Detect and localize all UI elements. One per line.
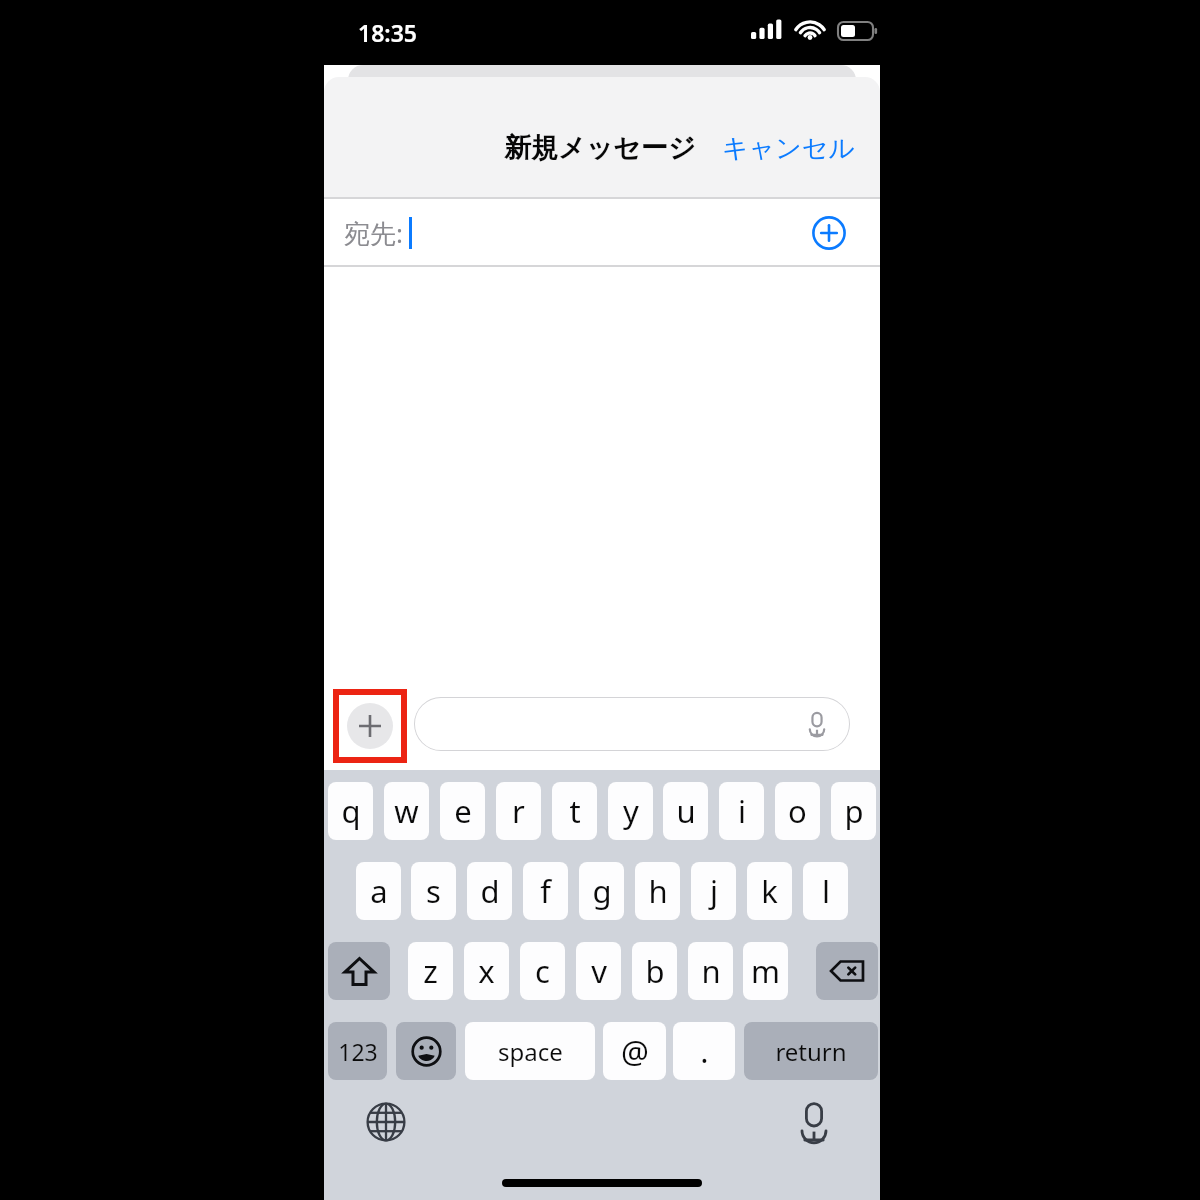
staticText: a bbox=[370, 870, 388, 912]
staticText: c bbox=[535, 950, 550, 992]
button[interactable]: t bbox=[552, 782, 597, 840]
staticText: o bbox=[788, 790, 807, 832]
staticText: l bbox=[822, 870, 830, 912]
button[interactable]: y bbox=[608, 782, 653, 840]
button[interactable]: o bbox=[775, 782, 820, 840]
button[interactable]: r bbox=[496, 782, 541, 840]
button[interactable]: s bbox=[411, 862, 456, 920]
button[interactable]: 連絡先を追加 bbox=[806, 210, 852, 256]
button[interactable]: a bbox=[356, 862, 401, 920]
button[interactable]: 追加 bbox=[347, 703, 393, 749]
staticText: キャンセル bbox=[722, 132, 856, 165]
staticText: u bbox=[676, 790, 696, 832]
staticText: j bbox=[710, 870, 718, 912]
button[interactable]: j bbox=[691, 862, 736, 920]
staticText: t bbox=[569, 790, 581, 832]
button[interactable]: キャンセル bbox=[698, 120, 880, 177]
staticText: g bbox=[592, 870, 612, 912]
button[interactable]: 削除 bbox=[816, 942, 878, 1000]
button[interactable]: space bbox=[465, 1022, 595, 1080]
button[interactable]: 音声入力 bbox=[414, 697, 850, 751]
button[interactable]: v bbox=[576, 942, 621, 1000]
staticText: v bbox=[591, 950, 607, 992]
staticText: z bbox=[423, 950, 438, 992]
button[interactable]: k bbox=[747, 862, 792, 920]
button[interactable]: i bbox=[719, 782, 764, 840]
staticText: f bbox=[540, 870, 551, 912]
staticText: 宛先: bbox=[344, 215, 403, 251]
button[interactable]: h bbox=[635, 862, 680, 920]
button[interactable]: w bbox=[384, 782, 429, 840]
button[interactable]: g bbox=[579, 862, 624, 920]
staticText: x bbox=[478, 950, 495, 992]
staticText: 18:35 bbox=[358, 17, 417, 48]
button[interactable]: . bbox=[673, 1022, 735, 1080]
staticText: k bbox=[761, 870, 778, 912]
button[interactable]: z bbox=[408, 942, 453, 1000]
staticText: w bbox=[394, 790, 419, 832]
staticText: p bbox=[844, 790, 864, 832]
button[interactable]: q bbox=[328, 782, 373, 840]
button[interactable]: d bbox=[467, 862, 512, 920]
button[interactable]: c bbox=[520, 942, 565, 1000]
staticText: return bbox=[775, 1035, 847, 1068]
staticText: q bbox=[341, 790, 361, 832]
staticText: 新規メッセージ bbox=[504, 131, 696, 165]
button[interactable]: p bbox=[831, 782, 876, 840]
button[interactable]: l bbox=[803, 862, 848, 920]
staticText: e bbox=[454, 790, 472, 832]
staticText: r bbox=[512, 790, 525, 832]
button[interactable]: 音声入力 bbox=[786, 1094, 842, 1150]
staticText: h bbox=[648, 870, 668, 912]
button[interactable]: 123 bbox=[328, 1022, 387, 1080]
staticText: @ bbox=[621, 1030, 649, 1072]
button[interactable]: f bbox=[523, 862, 568, 920]
staticText: m bbox=[751, 950, 780, 992]
staticText: b bbox=[645, 950, 665, 992]
button[interactable]: Shift bbox=[328, 942, 390, 1000]
staticText: s bbox=[426, 870, 441, 912]
button[interactable]: m bbox=[743, 942, 788, 1000]
button[interactable]: 言語を切り替え bbox=[358, 1094, 414, 1150]
staticText: y bbox=[623, 790, 639, 832]
button[interactable]: e bbox=[440, 782, 485, 840]
staticText: d bbox=[480, 870, 500, 912]
button[interactable]: b bbox=[632, 942, 677, 1000]
staticText: 123 bbox=[338, 1036, 378, 1067]
button[interactable]: 音声入力 bbox=[798, 705, 836, 743]
staticText: space bbox=[498, 1035, 563, 1068]
staticText: . bbox=[700, 1030, 709, 1072]
button[interactable]: return bbox=[744, 1022, 878, 1080]
button[interactable]: n bbox=[688, 942, 733, 1000]
button[interactable]: 絵文字 bbox=[396, 1022, 456, 1080]
button[interactable]: @ bbox=[603, 1022, 666, 1080]
staticText: n bbox=[701, 950, 721, 992]
button[interactable]: x bbox=[464, 942, 509, 1000]
button[interactable]: u bbox=[663, 782, 708, 840]
staticText: i bbox=[738, 790, 746, 832]
